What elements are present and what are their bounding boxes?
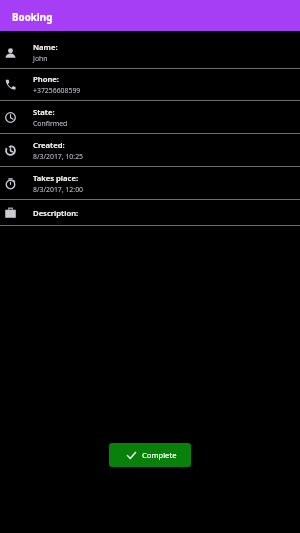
staticText: Takes place: xyxy=(33,173,79,183)
staticText: 8/3/2017, 10:25 xyxy=(33,152,84,161)
staticText: State: xyxy=(33,107,55,117)
button[interactable]: Takes place: xyxy=(0,167,300,200)
button[interactable]: Description: xyxy=(0,200,300,226)
staticText: 8/3/2017, 12:00 xyxy=(33,185,84,194)
staticText: +37256608599 xyxy=(33,86,81,95)
staticText: Name: xyxy=(33,42,58,52)
staticText: Complete xyxy=(142,450,177,460)
button[interactable]: Created: xyxy=(0,134,300,167)
staticText: John xyxy=(33,54,48,63)
staticText: Confirmed xyxy=(33,119,68,128)
button[interactable]: Phone: xyxy=(0,69,300,101)
button[interactable]: Complete xyxy=(109,443,191,467)
staticText: Created: xyxy=(33,140,65,150)
staticText: Phone: xyxy=(33,74,59,84)
staticText: Booking xyxy=(12,11,53,24)
button[interactable]: Name: xyxy=(0,31,300,69)
button[interactable]: State: xyxy=(0,101,300,134)
staticText: Description: xyxy=(33,208,79,218)
